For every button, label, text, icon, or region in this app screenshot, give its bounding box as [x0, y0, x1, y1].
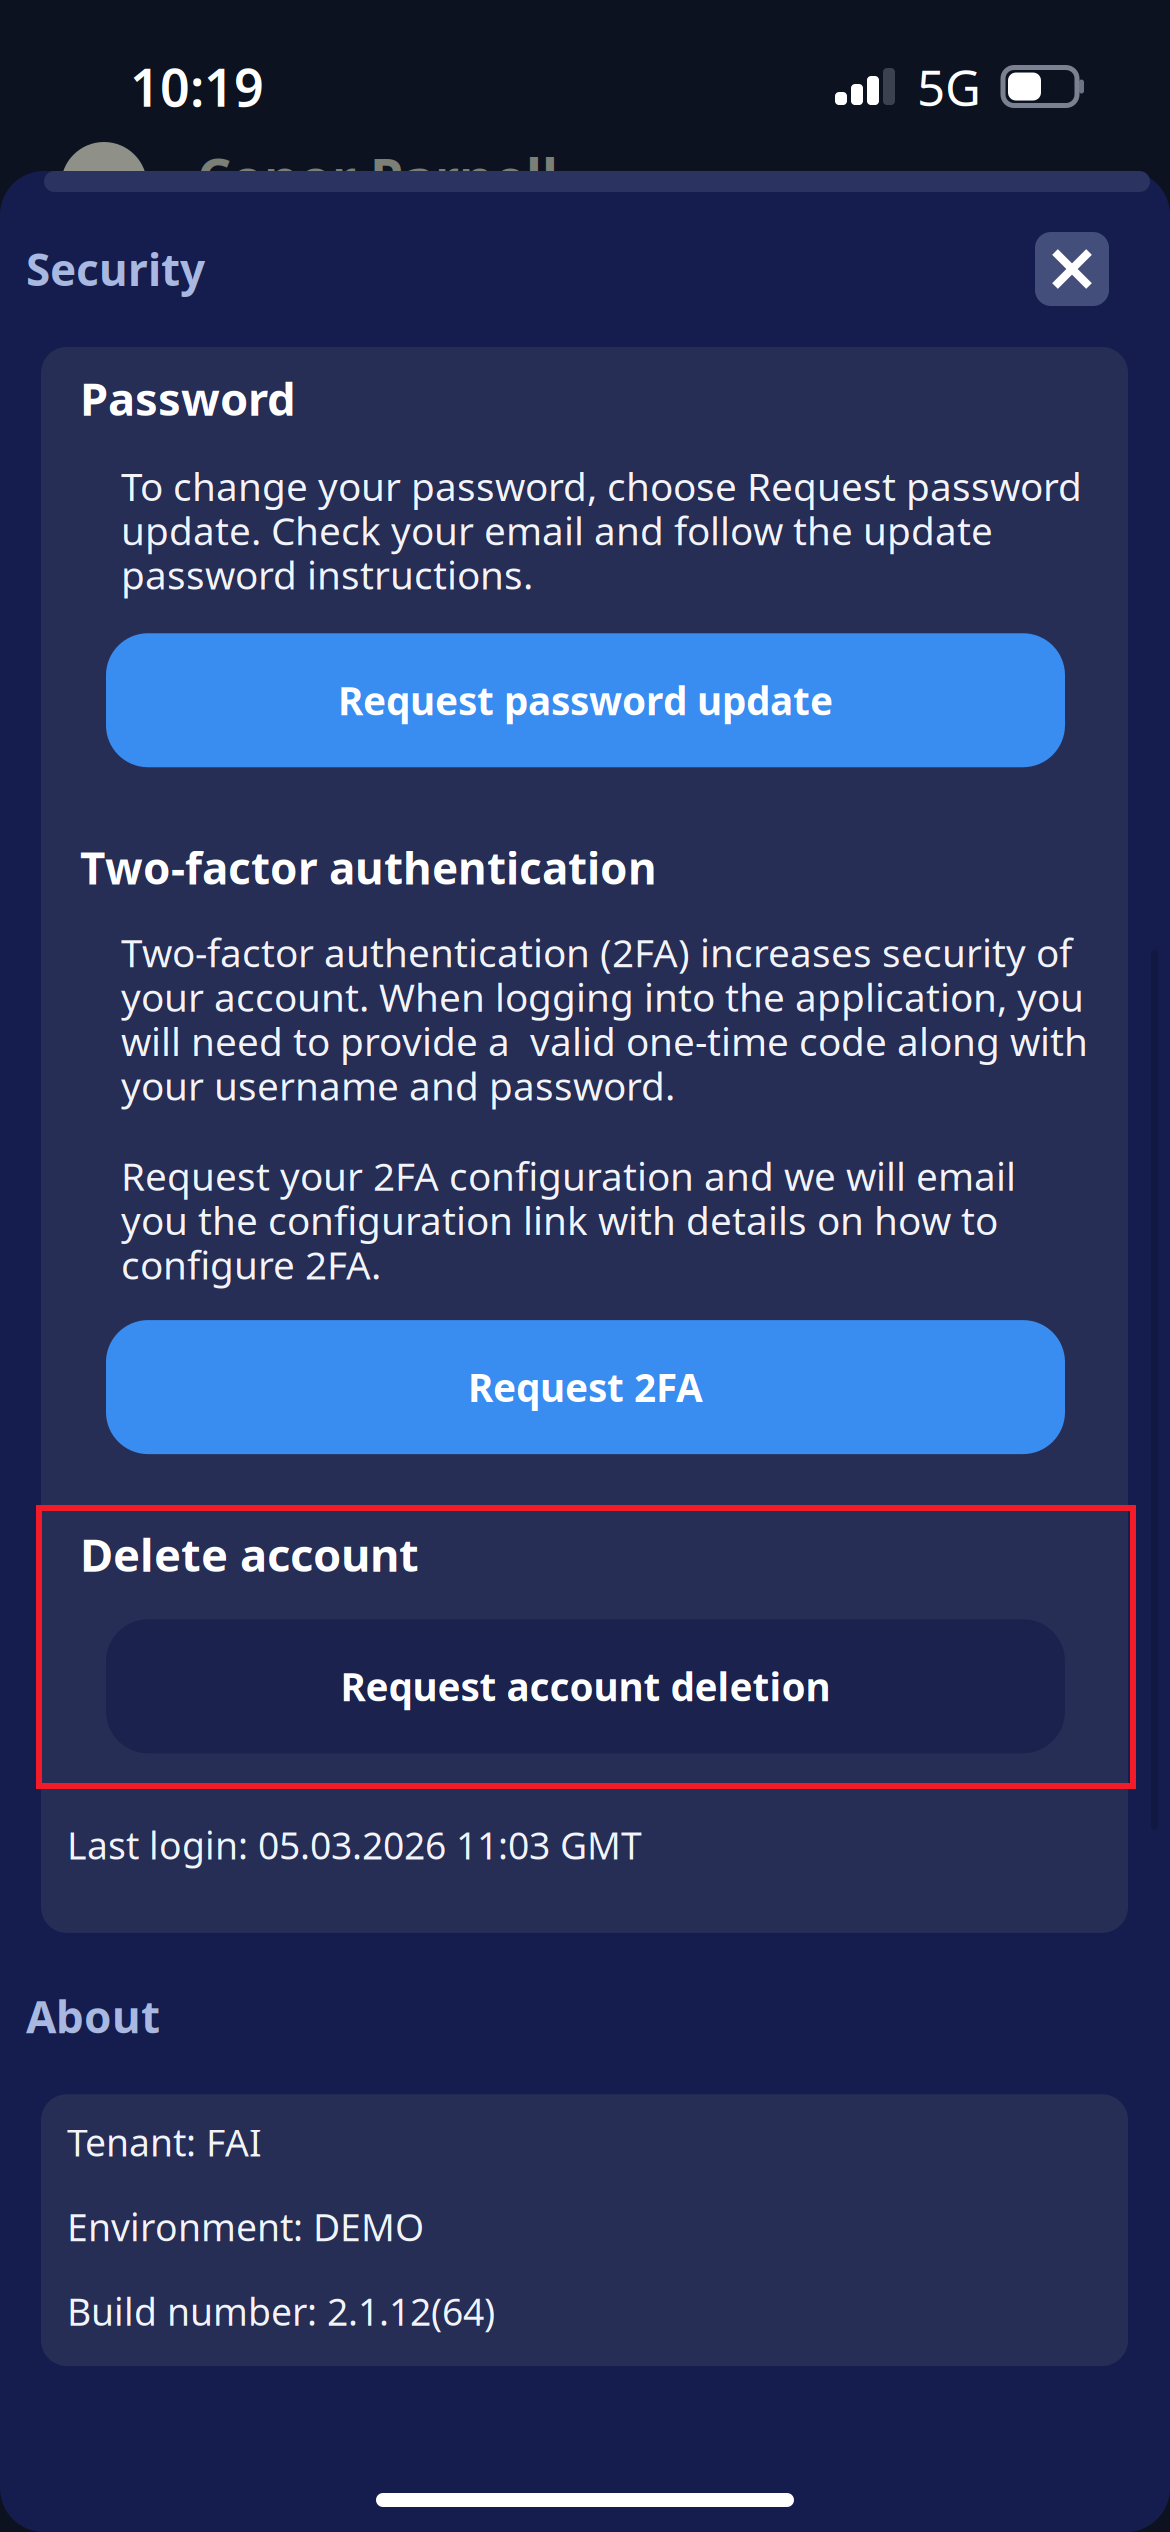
staticText: Request 2FA [468, 1361, 703, 1413]
staticText: Password [80, 368, 296, 428]
staticText: Security [26, 240, 205, 298]
staticText: 10:19 [130, 52, 264, 121]
staticText: To change your password, choose Request … [121, 460, 1082, 600]
staticText: Request password update [338, 675, 833, 726]
button[interactable]: Close [1035, 232, 1109, 306]
staticText: Last login: 05.03.2026 11:03 GMT [67, 1820, 642, 1870]
staticText: Conor Parnell [197, 142, 558, 213]
staticText: Request your 2FA configuration and we wi… [121, 1150, 1016, 1290]
button[interactable]: Request password update [106, 633, 1065, 767]
button[interactable]: Request account deletion [106, 1619, 1065, 1753]
staticText: Environment: DEMO [67, 2202, 424, 2251]
staticText: About [26, 1987, 160, 2045]
staticText: Two-factor authentication [80, 838, 657, 897]
staticText: Request account deletion [340, 1661, 830, 1712]
staticText: Build number: 2.1.12(64) [67, 2286, 495, 2336]
button[interactable]: Request 2FA [106, 1320, 1065, 1454]
staticText: 5G [917, 54, 981, 119]
staticText: Two-factor authentication (2FA) increase… [121, 927, 1088, 1111]
staticText: Delete account [80, 1524, 419, 1584]
staticText: Tenant: FAI [67, 2117, 262, 2167]
